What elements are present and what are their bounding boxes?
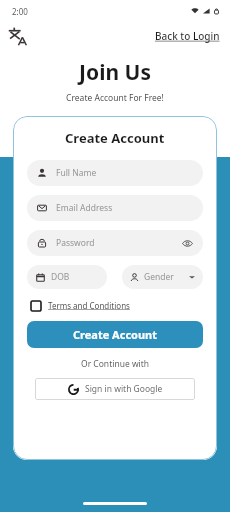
button[interactable]: Change language xyxy=(7,25,29,47)
staticText: Join Us xyxy=(0,58,230,87)
button[interactable]: Email Address xyxy=(27,195,203,221)
button[interactable]: Full Name xyxy=(27,160,203,186)
staticText: Create Account xyxy=(73,327,158,342)
staticText: Terms and Conditions xyxy=(48,300,130,311)
button[interactable]: Show password xyxy=(182,238,193,249)
staticText: DOB xyxy=(51,271,70,283)
button[interactable]: Create Account xyxy=(27,321,203,348)
staticText: Create Account For Free! xyxy=(0,92,230,104)
staticText: Gender xyxy=(144,271,174,283)
button[interactable]: Terms and Conditions xyxy=(27,300,203,311)
button[interactable]: DOB xyxy=(27,265,107,289)
staticText: Password xyxy=(56,237,95,249)
staticText: 2:00 xyxy=(12,6,28,17)
staticText: Create Account xyxy=(65,129,165,147)
staticText: Email Address xyxy=(56,202,113,214)
staticText: Full Name xyxy=(56,167,97,179)
staticText: Sign in with Google xyxy=(85,383,163,395)
button[interactable]: Sign in with Google xyxy=(35,378,195,400)
staticText: Or Continue with xyxy=(81,358,150,370)
staticText: Back to Login xyxy=(155,29,220,43)
button[interactable]: Password xyxy=(27,230,203,256)
button[interactable]: Gender xyxy=(122,265,203,289)
button[interactable]: Back to Login xyxy=(155,29,220,43)
